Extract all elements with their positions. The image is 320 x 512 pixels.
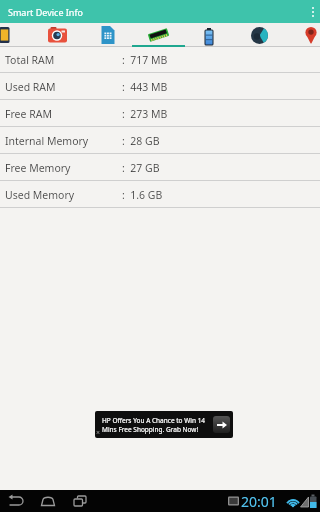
- button[interactable]: [0, 23, 45, 47]
- button[interactable]: [136, 23, 182, 47]
- staticText: : 443 MB: [122, 80, 168, 94]
- staticText: Used Memory: [5, 188, 75, 202]
- staticText: : 1.6 GB: [122, 188, 163, 202]
- staticText: : 273 MB: [122, 107, 168, 121]
- button[interactable]: [62, 490, 124, 512]
- button[interactable]: [0, 490, 62, 512]
- staticText: ×: [96, 428, 101, 438]
- staticText: : 27 GB: [122, 161, 160, 175]
- button[interactable]: Free RAM: [0, 100, 320, 127]
- button[interactable]: [228, 23, 274, 47]
- staticText: Internal Memory: [5, 134, 89, 148]
- button[interactable]: Free Memory: [0, 154, 320, 181]
- staticText: HP Offers You A Chance to Win 14: [102, 416, 206, 425]
- staticText: Total RAM: [5, 53, 55, 67]
- staticText: Free Memory: [5, 161, 71, 175]
- button[interactable]: HP Offers You A Chance to Win 14: [95, 411, 233, 438]
- staticText: Used RAM: [5, 80, 56, 94]
- button[interactable]: [312, 7, 314, 17]
- button[interactable]: [274, 23, 320, 47]
- button[interactable]: Total RAM: [0, 47, 320, 73]
- staticText: : 28 GB: [122, 134, 160, 148]
- button[interactable]: [182, 23, 228, 47]
- staticText: : 717 MB: [122, 53, 168, 67]
- button[interactable]: [90, 23, 136, 47]
- button[interactable]: [45, 23, 90, 47]
- staticText: Mins Free Shopping. Grab Now!: [102, 425, 199, 434]
- button[interactable]: Used Memory: [0, 181, 320, 208]
- staticText: Smart Device Info: [8, 6, 83, 18]
- staticText: 20:01: [241, 492, 277, 511]
- button[interactable]: Used RAM: [0, 73, 320, 100]
- button[interactable]: Internal Memory: [0, 127, 320, 154]
- staticText: Free RAM: [5, 107, 52, 121]
